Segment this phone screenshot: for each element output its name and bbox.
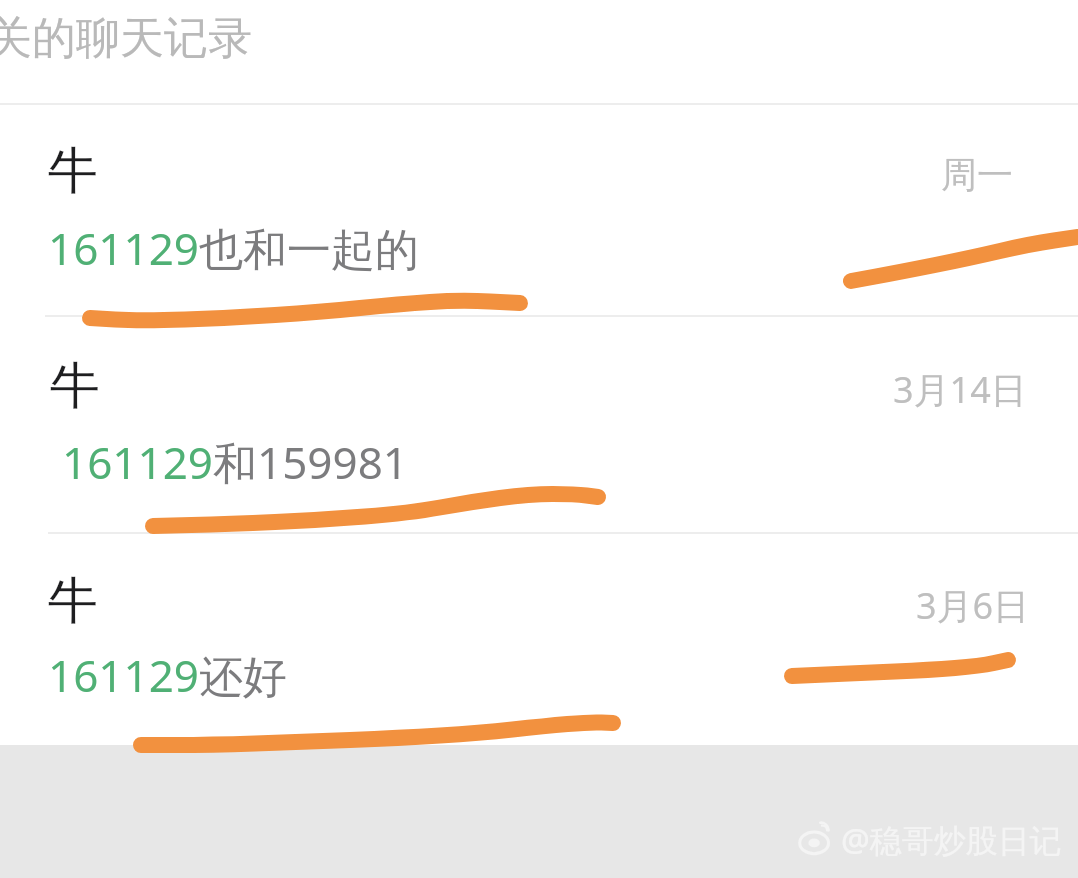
button[interactable]: [0, 534, 1078, 745]
staticText: 关的聊天记录: [0, 11, 252, 66]
staticText: 161129和159981: [62, 432, 409, 492]
staticText: 161129也和一起的: [48, 218, 420, 278]
staticText: 周一: [941, 152, 1013, 197]
button[interactable]: [0, 104, 1078, 315]
button[interactable]: [0, 317, 1078, 532]
staticText: 牛: [48, 140, 98, 203]
other: Weibo: [799, 822, 835, 858]
button[interactable]: 关的聊天记录: [0, 0, 1078, 104]
staticText: 161129还好: [48, 645, 288, 705]
staticText: 3月6日: [916, 581, 1030, 630]
staticText: 3月14日: [893, 365, 1027, 414]
staticText: 牛: [48, 570, 98, 633]
staticText: @稳哥炒股日记: [841, 818, 1062, 862]
staticText: 牛: [50, 355, 100, 418]
